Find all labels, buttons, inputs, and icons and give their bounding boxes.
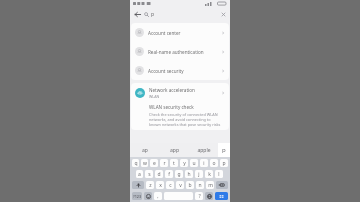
button[interactable]: b xyxy=(186,181,194,189)
button[interactable]: Network acceleration xyxy=(131,83,229,103)
button[interactable]: Emoji xyxy=(144,192,152,200)
button[interactable]: e xyxy=(150,159,158,167)
button[interactable]: app xyxy=(160,143,189,157)
button[interactable]: t xyxy=(170,159,178,167)
button[interactable]: Clear xyxy=(216,7,230,21)
staticText: h xyxy=(187,171,191,178)
button[interactable]: l xyxy=(215,170,223,178)
staticText: Account center xyxy=(148,30,181,36)
staticText: x xyxy=(159,182,162,189)
button[interactable]: h xyxy=(185,170,193,178)
staticText: j xyxy=(198,171,200,178)
staticText: i xyxy=(203,160,205,167)
staticText: ? xyxy=(198,193,201,200)
button[interactable]: r xyxy=(160,159,168,167)
staticText: y xyxy=(183,160,186,167)
button[interactable]: a xyxy=(136,170,143,178)
staticText: Network acceleration xyxy=(149,87,195,93)
button[interactable]: Account security xyxy=(131,61,229,80)
staticText: o xyxy=(212,160,216,167)
button[interactable]: i xyxy=(200,159,208,167)
staticText: e xyxy=(153,160,156,167)
staticText: c xyxy=(169,182,172,189)
staticText: WLAN security check xyxy=(149,104,194,110)
staticText: d xyxy=(157,171,161,178)
staticText: q xyxy=(134,160,138,167)
button[interactable]: g xyxy=(175,170,183,178)
button[interactable]: Backspace xyxy=(216,181,228,189)
staticText: a xyxy=(138,171,141,178)
button[interactable]: k xyxy=(205,170,213,178)
button[interactable]: s xyxy=(145,170,153,178)
button[interactable]: Back xyxy=(130,7,144,21)
staticText: n xyxy=(198,182,202,189)
staticText: b xyxy=(188,182,192,189)
button[interactable]: apple xyxy=(189,143,218,157)
staticText: f xyxy=(168,171,170,178)
staticText: , xyxy=(157,193,159,200)
button[interactable]: Account center xyxy=(131,23,229,42)
button[interactable]: v xyxy=(176,181,184,189)
staticText: p xyxy=(151,11,155,18)
staticText: ?123 xyxy=(133,194,142,199)
button[interactable]: j xyxy=(195,170,203,178)
staticText: ap xyxy=(142,147,148,154)
button[interactable]: z xyxy=(146,181,154,189)
button[interactable]: p xyxy=(218,143,230,157)
staticText: p xyxy=(222,146,226,154)
staticText: apple xyxy=(197,147,211,154)
button[interactable]: Language xyxy=(205,192,213,200)
button[interactable]: ? xyxy=(195,192,203,200)
button[interactable]: WLAN security check xyxy=(131,103,229,130)
staticText: s xyxy=(148,171,151,178)
staticText: t xyxy=(173,160,175,167)
staticText: Account security xyxy=(148,68,184,74)
button[interactable]: d xyxy=(155,170,163,178)
button[interactable]: f xyxy=(165,170,173,178)
button[interactable]: ap xyxy=(130,143,160,157)
button[interactable]: Enter xyxy=(215,192,228,200)
button[interactable]: q xyxy=(132,159,139,167)
button[interactable]: w xyxy=(141,159,148,167)
staticText: m xyxy=(208,182,213,189)
button[interactable]: n xyxy=(196,181,204,189)
button[interactable]: ?123 xyxy=(132,192,142,200)
button[interactable]: m xyxy=(206,181,214,189)
staticText: u xyxy=(192,160,196,167)
button[interactable]: u xyxy=(190,159,198,167)
staticText: r xyxy=(163,160,166,167)
button[interactable]: o xyxy=(210,159,218,167)
button[interactable]: p xyxy=(220,159,228,167)
staticText: z xyxy=(149,182,152,189)
button[interactable]: p xyxy=(144,11,216,18)
staticText: Check the security of connected WLAN net… xyxy=(149,112,223,127)
staticText: app xyxy=(170,147,179,154)
button[interactable]: Shift xyxy=(132,181,144,189)
staticText: g xyxy=(177,171,181,178)
staticText: k xyxy=(208,171,211,178)
staticText: w xyxy=(143,160,147,167)
staticText: l xyxy=(218,171,220,178)
button[interactable]: y xyxy=(180,159,188,167)
button[interactable]: x xyxy=(156,181,164,189)
staticText: WLAN xyxy=(149,94,160,99)
button[interactable]: , xyxy=(154,192,162,200)
staticText: v xyxy=(179,182,182,189)
button[interactable]: Real-name authentication xyxy=(131,42,229,61)
button[interactable]: c xyxy=(166,181,174,189)
staticText: Real-name authentication xyxy=(148,49,204,55)
staticText: p xyxy=(222,160,226,167)
